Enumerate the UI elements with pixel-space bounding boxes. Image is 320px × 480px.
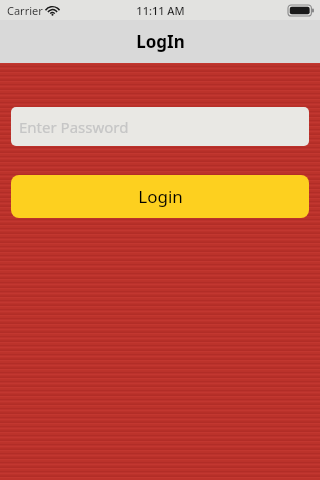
other: Battery full <box>288 5 314 16</box>
staticText: Enter Password <box>19 117 129 137</box>
staticText: LogIn <box>136 30 185 53</box>
staticText: Login <box>138 185 183 208</box>
staticText: Carrier <box>7 3 43 18</box>
staticText: 11:11 AM <box>136 3 185 18</box>
other: Wi-Fi signal <box>47 6 58 15</box>
button[interactable]: Login <box>11 175 309 218</box>
button[interactable]: Enter Password <box>11 107 309 146</box>
